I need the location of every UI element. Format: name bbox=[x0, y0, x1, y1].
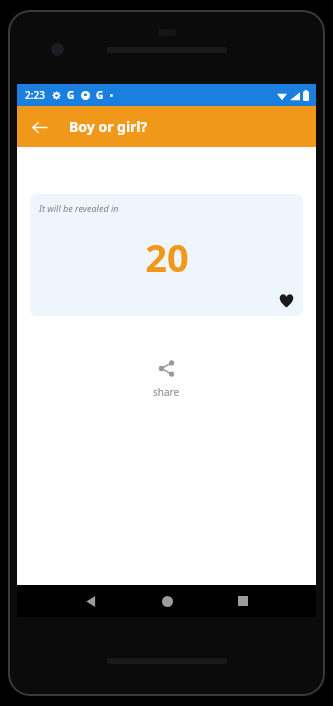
staticText: G bbox=[96, 88, 104, 102]
staticText: 20 bbox=[145, 231, 189, 283]
staticText: It will be revealed in bbox=[39, 202, 119, 214]
button[interactable]: It will be revealed in bbox=[30, 194, 303, 316]
staticText: Boy or girl? bbox=[69, 117, 148, 136]
button[interactable]: share bbox=[135, 355, 198, 404]
button[interactable]: Back bbox=[77, 588, 103, 614]
staticText: share bbox=[153, 385, 180, 399]
button[interactable]: Back bbox=[25, 113, 53, 141]
staticText: G bbox=[67, 88, 75, 102]
button[interactable]: Home bbox=[154, 588, 180, 614]
staticText: 2:23 bbox=[25, 88, 45, 102]
button[interactable]: Recent apps bbox=[230, 588, 256, 614]
button[interactable]: Favorite bbox=[277, 291, 295, 309]
